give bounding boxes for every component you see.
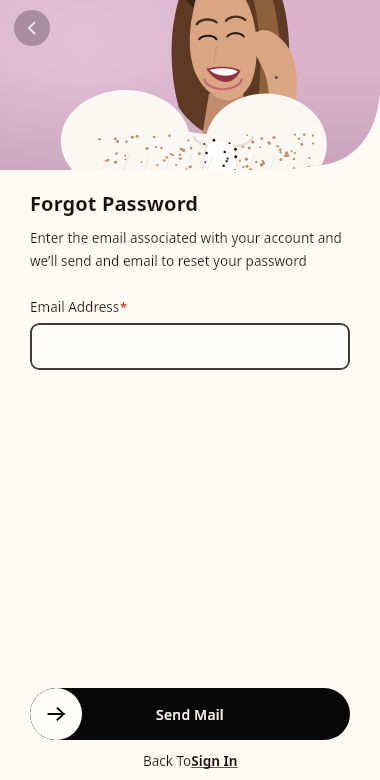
staticText: Enter the email associated with your acc… [30,229,352,270]
staticText: Send Mail [156,705,224,724]
staticText: Email Address [30,298,120,316]
button[interactable]: Back [14,10,50,46]
button[interactable]: Back ToSign In [143,752,238,770]
staticText: Forgot Password [30,190,199,217]
button[interactable]: Send Mail [30,688,350,740]
staticText: * [120,298,128,316]
button[interactable] [30,323,350,370]
